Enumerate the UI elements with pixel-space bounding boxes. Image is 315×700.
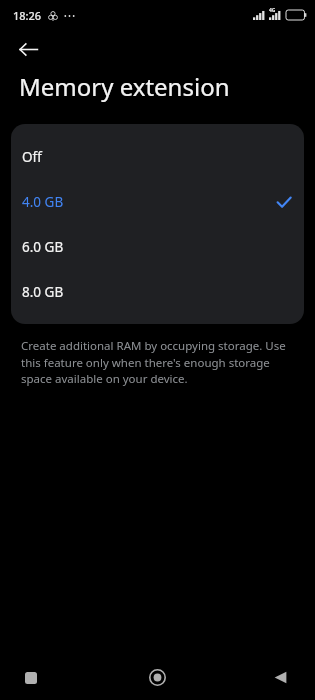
- button[interactable]: 4.0 GB: [11, 179, 304, 224]
- button[interactable]: Back: [210, 655, 315, 700]
- staticText: 6.0 GB: [22, 238, 64, 256]
- button[interactable]: Home: [105, 655, 210, 700]
- staticText: Off: [22, 148, 42, 166]
- button[interactable]: 6.0 GB: [11, 224, 304, 269]
- staticText: 8.0 GB: [22, 283, 64, 301]
- button[interactable]: Off: [11, 134, 304, 179]
- staticText: Memory extension: [19, 70, 230, 103]
- staticText: 18:26: [13, 8, 42, 23]
- staticText: Create additional RAM by occupying stora…: [21, 338, 294, 386]
- staticText: 4G: [269, 7, 276, 14]
- button[interactable]: Back: [10, 31, 46, 67]
- button[interactable]: 8.0 GB: [11, 269, 304, 314]
- button[interactable]: Recents: [0, 655, 105, 700]
- staticText: 4.0 GB: [22, 193, 64, 211]
